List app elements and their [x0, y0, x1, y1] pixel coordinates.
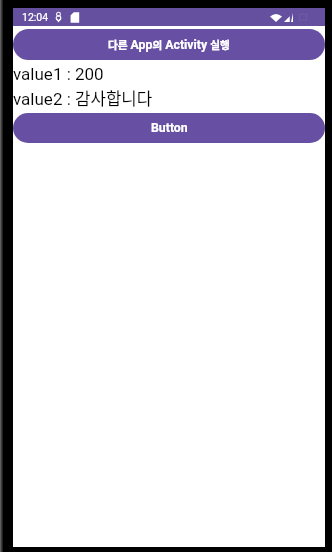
- button[interactable]: Button: [13, 113, 325, 143]
- staticText: value1 : 200: [13, 64, 104, 84]
- other: Battery: [299, 13, 308, 21]
- button[interactable]: 다른 App의 Activity 실행: [13, 29, 325, 60]
- staticText: 12:04: [22, 11, 49, 23]
- staticText: Button: [151, 121, 188, 135]
- staticText: value2 : 감사합니다: [13, 86, 153, 110]
- staticText: 다른 App의 Activity 실행: [108, 37, 230, 52]
